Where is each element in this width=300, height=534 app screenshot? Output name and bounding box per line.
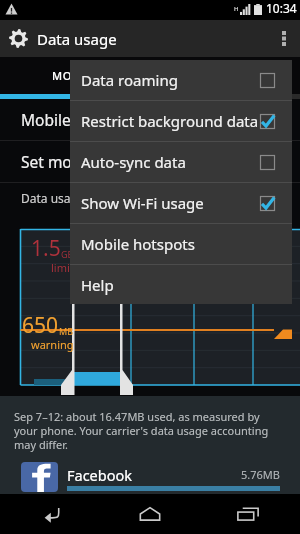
- staticText: Facebook: [67, 465, 133, 485]
- staticText: Mobile data: [21, 109, 108, 130]
- button[interactable]: Show Wi-Fi usage: [70, 183, 292, 223]
- button[interactable]: More options: [268, 20, 300, 57]
- staticText: 10:34: [266, 0, 297, 16]
- staticText: Mobile hotspots: [81, 234, 195, 254]
- staticText: Set mobile data limit: [21, 151, 171, 172]
- staticText: GB: [61, 248, 74, 260]
- staticText: MOBILE: [52, 68, 98, 83]
- button[interactable]: Recent apps: [195, 494, 300, 534]
- button[interactable]: Restrict background data: [70, 101, 292, 141]
- staticText: Restrict background data: [81, 111, 259, 131]
- staticText: Show Wi-Fi usage: [81, 193, 204, 213]
- staticText: Help: [81, 275, 114, 295]
- staticText: Data usage: [37, 29, 117, 49]
- button[interactable]: Data roaming: [70, 60, 292, 100]
- button[interactable]: Facebook: [0, 462, 300, 502]
- staticText: 650: [22, 311, 59, 340]
- staticText: warning: [31, 337, 74, 352]
- staticText: Auto-sync data: [81, 152, 186, 172]
- button[interactable]: Mobile data: [0, 99, 300, 140]
- staticText: H: [234, 5, 239, 13]
- staticText: Data usage cycle: [21, 190, 116, 206]
- button[interactable]: Auto-sync data: [70, 142, 292, 182]
- button[interactable]: WI-FI: [150, 57, 300, 94]
- staticText: limit: [51, 260, 74, 275]
- button[interactable]: Home: [105, 494, 195, 534]
- button[interactable]: MOBILE: [0, 57, 150, 94]
- staticText: 5.76MB: [241, 467, 280, 482]
- staticText: Sep 7–12: about 16.47MB used, as measure…: [14, 409, 282, 452]
- staticText: MB: [59, 325, 74, 337]
- staticText: Data roaming: [81, 70, 178, 90]
- button[interactable]: Set mobile data limit: [0, 141, 300, 182]
- staticText: 1.5: [31, 234, 61, 263]
- button[interactable]: Back: [0, 494, 105, 534]
- button[interactable]: Help: [70, 265, 292, 304]
- button[interactable]: Mobile hotspots: [70, 224, 292, 264]
